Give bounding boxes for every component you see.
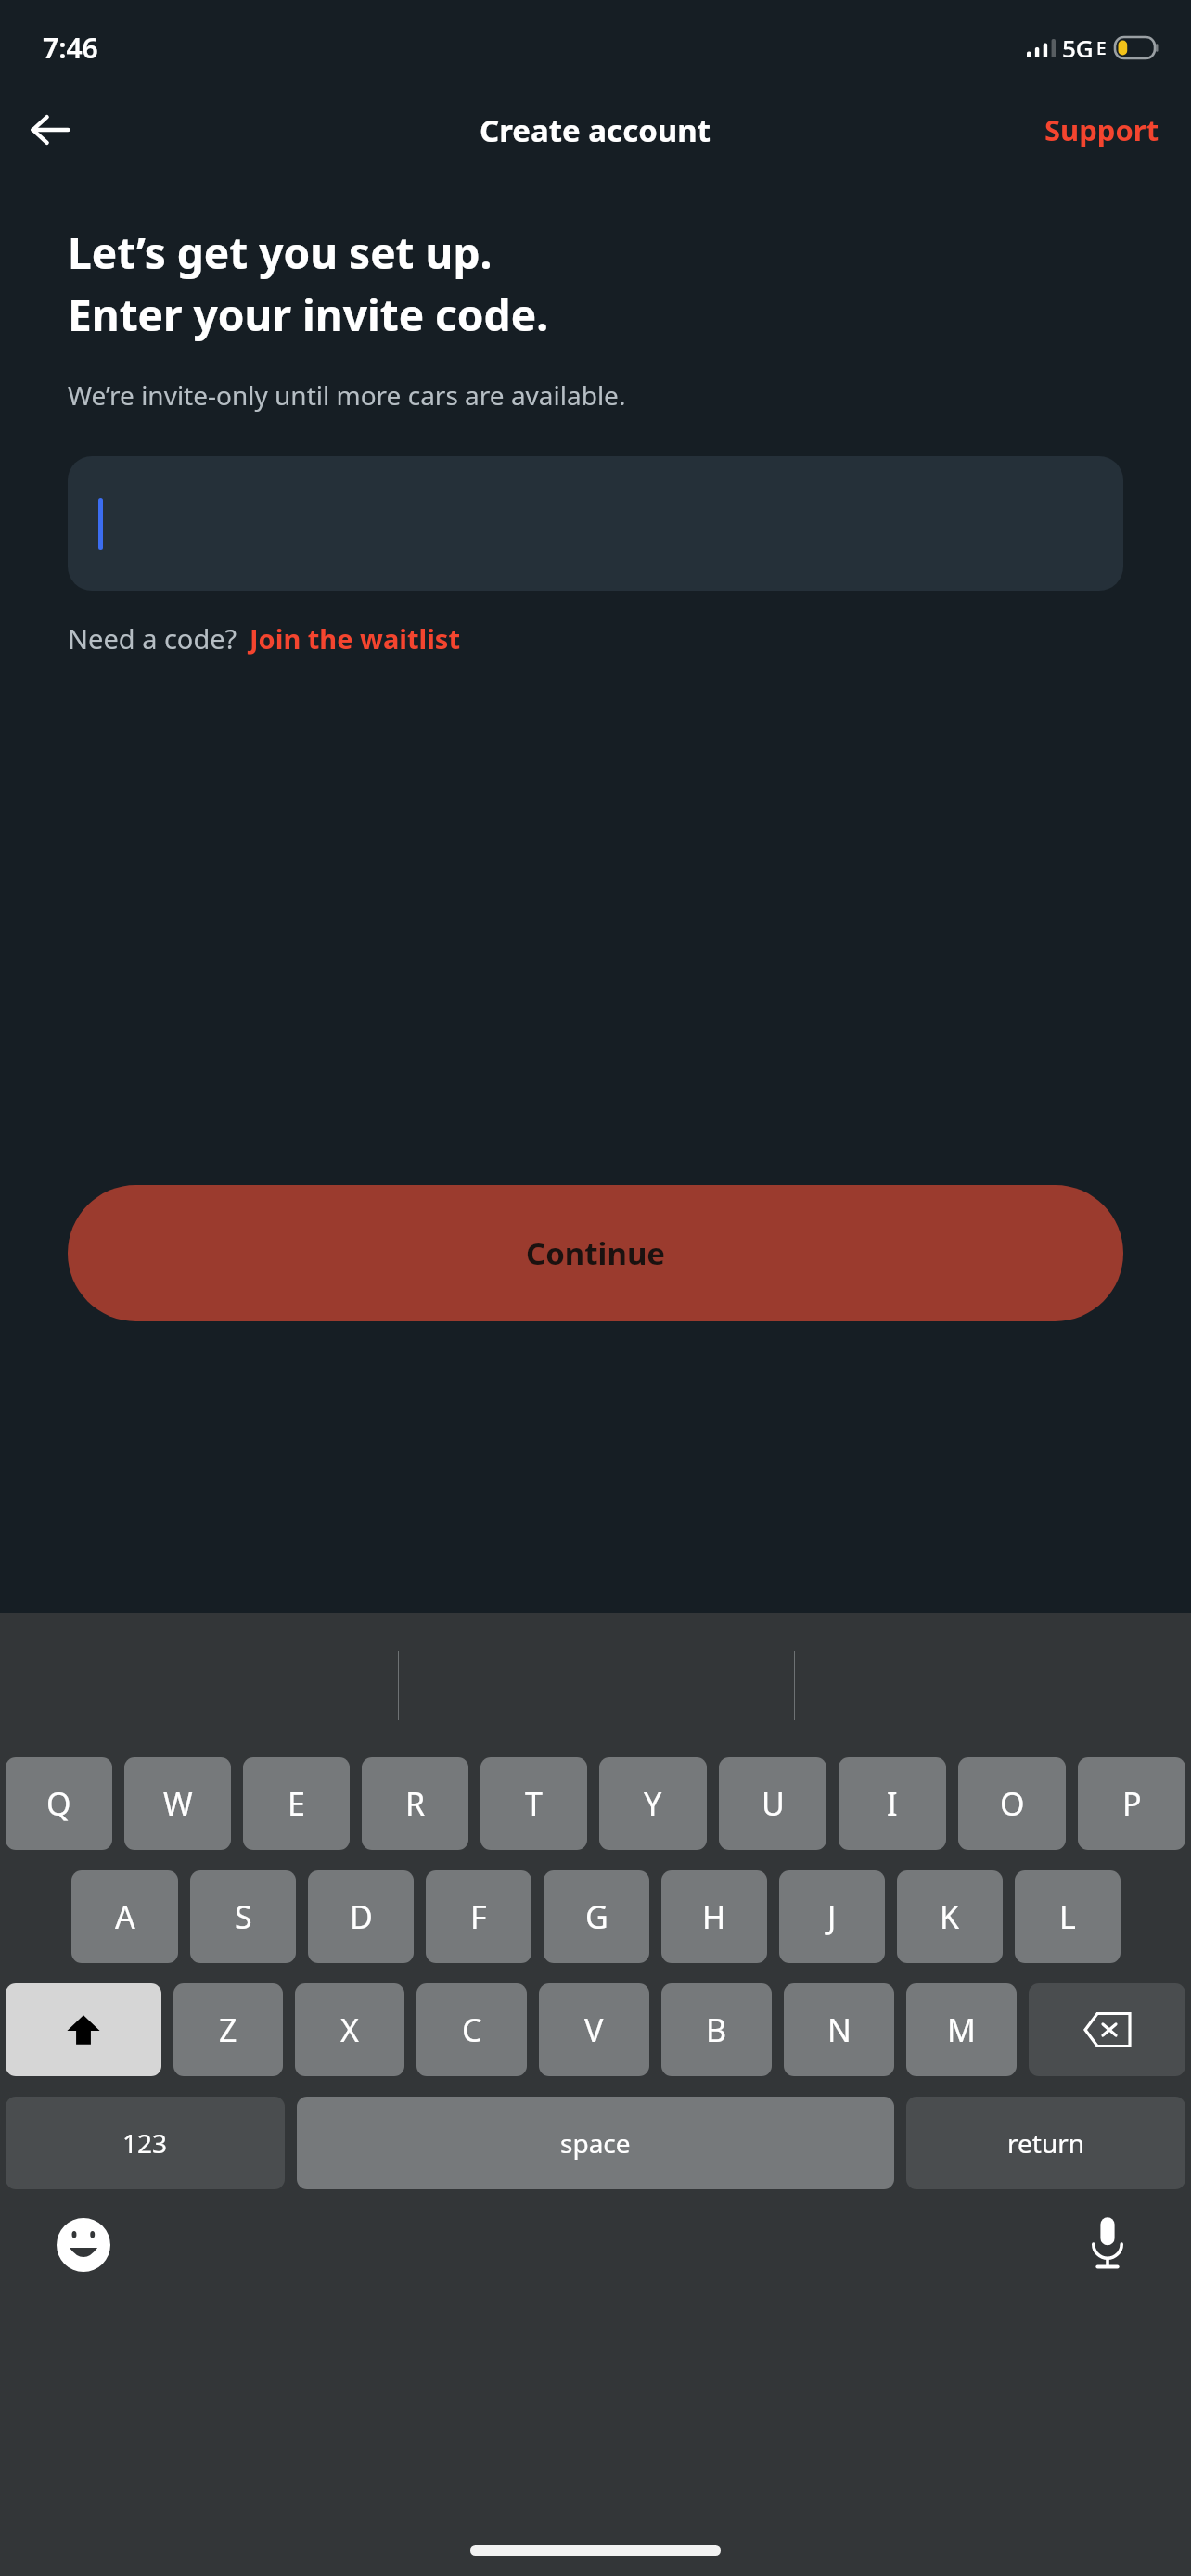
staticText: Create account (480, 109, 711, 151)
button[interactable]: A (71, 1870, 178, 1963)
staticText: 7:46 (43, 29, 98, 67)
staticText: 5G (1062, 32, 1094, 64)
staticText: H (702, 1895, 726, 1938)
button[interactable]: E (243, 1757, 350, 1850)
button[interactable]: I (839, 1757, 946, 1850)
staticText: Support (1044, 110, 1159, 149)
staticText: M (947, 2009, 976, 2051)
button[interactable]: T (480, 1757, 587, 1850)
staticText: S (235, 1895, 252, 1938)
staticText: P (1122, 1782, 1142, 1825)
staticText: T (525, 1782, 543, 1825)
staticText: U (762, 1782, 785, 1825)
staticText: C (462, 2009, 482, 2051)
staticText: J (827, 1895, 837, 1938)
button[interactable]: Q (6, 1757, 112, 1850)
button[interactable] (68, 456, 1123, 591)
button[interactable]: S (190, 1870, 296, 1963)
staticText: Continue (526, 1232, 666, 1274)
staticText: V (584, 2009, 604, 2051)
staticText: Enter your invite code. (68, 286, 549, 344)
button[interactable]: Join the waitlist (250, 620, 460, 657)
button[interactable]: H (661, 1870, 767, 1963)
staticText: N (827, 2009, 852, 2051)
button[interactable]: space (297, 2097, 894, 2189)
button[interactable]: V (539, 1983, 649, 2076)
button[interactable]: Emoji (54, 2215, 113, 2275)
button[interactable]: Dictate (1078, 2213, 1137, 2273)
staticText: return (1007, 2125, 1085, 2161)
staticText: I (887, 1782, 898, 1825)
staticText: K (940, 1895, 960, 1938)
button[interactable]: J (779, 1870, 885, 1963)
button[interactable]: D (308, 1870, 414, 1963)
button[interactable]: Y (599, 1757, 707, 1850)
button[interactable]: X (295, 1983, 404, 2076)
button[interactable]: B (661, 1983, 772, 2076)
button[interactable]: Shift (6, 1983, 161, 2076)
staticText: Q (46, 1782, 71, 1825)
button[interactable]: F (426, 1870, 531, 1963)
button[interactable]: L (1015, 1870, 1121, 1963)
staticText: Let’s get you set up. (68, 223, 493, 282)
staticText: We’re invite-only until more cars are av… (68, 377, 626, 413)
staticText: W (163, 1782, 193, 1825)
staticText: E (288, 1782, 305, 1825)
button[interactable]: R (362, 1757, 468, 1850)
staticText: A (115, 1895, 135, 1938)
button[interactable]: U (719, 1757, 826, 1850)
staticText: X (340, 2009, 359, 2051)
button[interactable]: C (416, 1983, 527, 2076)
staticText: L (1059, 1895, 1076, 1938)
button[interactable]: K (897, 1870, 1003, 1963)
button[interactable]: Back (20, 100, 80, 159)
staticText: F (470, 1895, 487, 1938)
staticText: Join the waitlist (250, 620, 460, 657)
button[interactable]: Z (173, 1983, 283, 2076)
button[interactable]: return (906, 2097, 1185, 2189)
button[interactable]: Continue (68, 1185, 1123, 1321)
button[interactable]: O (958, 1757, 1066, 1850)
button[interactable]: Backspace (1029, 1983, 1185, 2076)
staticText: O (1000, 1782, 1025, 1825)
staticText: Need a code? (68, 620, 237, 657)
button[interactable]: 123 (6, 2097, 285, 2189)
staticText: Z (219, 2009, 237, 2051)
staticText: 123 (122, 2125, 168, 2161)
button[interactable]: G (544, 1870, 649, 1963)
staticText: G (585, 1895, 608, 1938)
button[interactable]: P (1078, 1757, 1185, 1850)
staticText: Y (644, 1782, 662, 1825)
staticText: D (350, 1895, 373, 1938)
button[interactable]: M (906, 1983, 1017, 2076)
button[interactable]: Support (1035, 103, 1169, 157)
button[interactable]: N (784, 1983, 894, 2076)
staticText: space (560, 2125, 631, 2161)
staticText: R (405, 1782, 426, 1825)
staticText: B (706, 2009, 727, 2051)
button[interactable]: W (124, 1757, 231, 1850)
staticText: E (1096, 36, 1107, 60)
